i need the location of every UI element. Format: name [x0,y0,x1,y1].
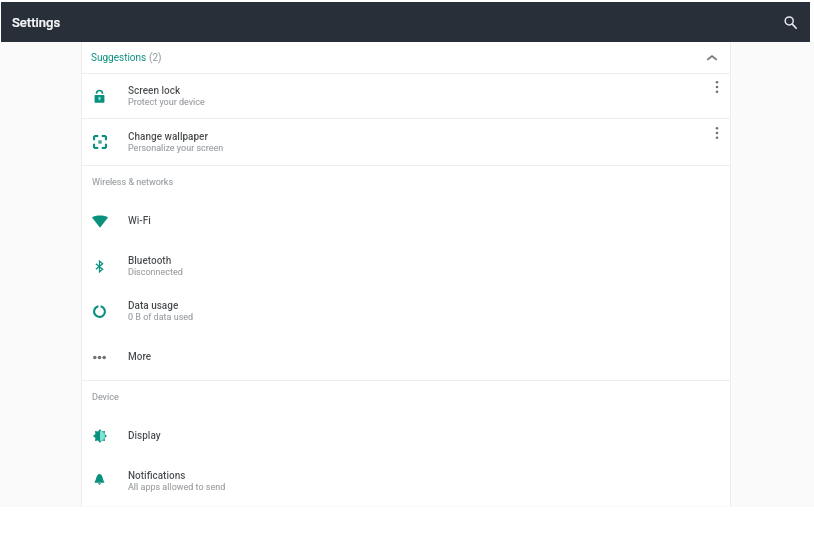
staticText: More [128,351,152,363]
staticText: Protect your device [128,97,205,108]
staticText: Data usage [128,300,179,312]
button[interactable]: Bluetooth [82,243,730,289]
button[interactable]: Wi-Fi [82,198,730,243]
staticText: 0 B of data used [128,312,194,323]
staticText: Suggestions [91,52,149,64]
button[interactable]: Suggestions [82,42,730,73]
button[interactable]: Display [82,413,730,458]
button[interactable]: Settings [1,2,810,42]
staticText: Disconnected [128,267,183,278]
staticText: Screen lock [128,85,181,97]
staticText: All apps allowed to send [128,482,226,493]
staticText: Settings [12,15,61,30]
staticText: Bluetooth [128,255,172,267]
staticText: Wireless & networks [92,177,174,188]
button[interactable]: Data usage [82,289,730,334]
button[interactable]: Collapse suggestions [702,48,722,68]
staticText: Notifications [128,470,186,482]
button[interactable]: Notifications [82,458,730,504]
staticText: Device [92,392,119,403]
staticText: (2) [149,52,162,64]
button[interactable]: Change wallpaper [82,119,730,165]
staticText: Change wallpaper [128,131,208,143]
button[interactable]: Screen lock [82,74,730,118]
button[interactable]: More [82,334,730,380]
staticText: Display [128,430,161,442]
staticText: Personalize your screen [128,143,224,154]
button[interactable]: More options [704,119,730,165]
staticText: Wi-Fi [128,215,151,227]
button[interactable]: Search [779,11,801,33]
button[interactable]: More options [704,74,730,118]
